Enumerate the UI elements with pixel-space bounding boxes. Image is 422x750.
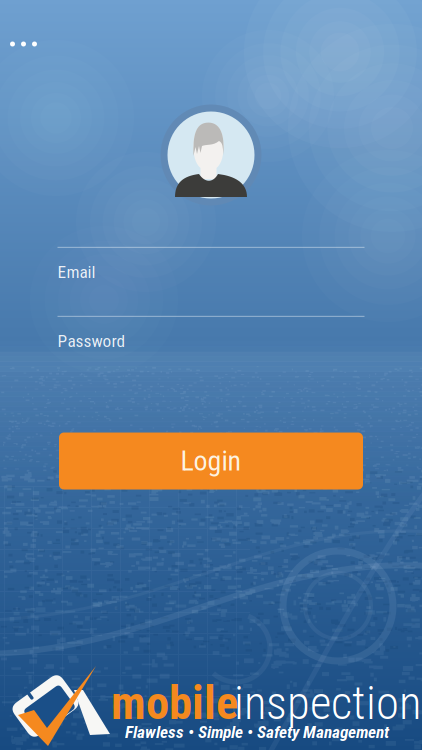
button[interactable]: Email <box>57 247 364 287</box>
staticText: mobile <box>111 676 238 730</box>
button[interactable]: Password <box>57 316 364 356</box>
staticText: inspection <box>234 676 421 730</box>
staticText: Flawless • Simple • Safety Management <box>125 722 389 742</box>
staticText: Password <box>57 331 125 351</box>
staticText: Login <box>180 445 241 477</box>
button[interactable]: Login <box>59 432 363 489</box>
staticText: Email <box>57 262 95 282</box>
